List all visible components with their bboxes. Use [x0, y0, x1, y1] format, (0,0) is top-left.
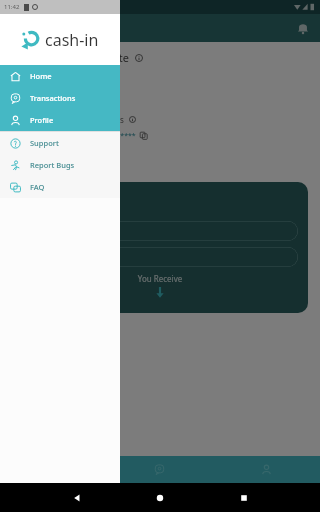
- staticText: You Receive: [22, 273, 298, 284]
- button[interactable]: [22, 247, 298, 267]
- staticText: Support: [30, 138, 59, 148]
- button[interactable]: Support: [0, 132, 120, 154]
- button[interactable]: Back: [70, 491, 84, 505]
- staticText: : Coming soon..: [54, 162, 106, 172]
- staticText: Report Bugs: [30, 160, 75, 170]
- button[interactable]: Transactions: [106, 456, 213, 483]
- staticText: cash-in: [45, 29, 99, 51]
- staticText: bc1qrf5nf857zns2*********: [42, 131, 136, 141]
- button[interactable]: FAQ: [0, 176, 120, 198]
- staticText: ₦0: [22, 300, 298, 305]
- staticText: Rate Calculator: [22, 190, 91, 202]
- staticText: FAQ: [30, 182, 45, 192]
- button[interactable]: Home: [0, 65, 120, 87]
- button[interactable]: Report Bugs: [0, 154, 120, 176]
- staticText: .81/USD: [65, 92, 96, 103]
- staticText: USDC: [35, 162, 54, 172]
- button[interactable]: Transactions: [0, 87, 120, 109]
- staticText: ₦: [12, 88, 20, 106]
- staticText: USDT: [35, 147, 54, 157]
- staticText: Profile: [30, 115, 54, 125]
- staticText: Home: [30, 71, 52, 81]
- button[interactable]: Notifications: [294, 19, 312, 37]
- staticText: Transactions: [30, 93, 76, 103]
- staticText: Today's Exchange Rate: [12, 50, 130, 65]
- staticText: 11:42: [4, 3, 20, 11]
- button[interactable]: Profile: [0, 109, 120, 131]
- button[interactable]: Recents: [237, 491, 251, 505]
- button[interactable]: [22, 221, 298, 241]
- staticText: Bitcoin:: [12, 131, 39, 141]
- staticText: 616: [20, 71, 65, 106]
- button[interactable]: Copy address: [140, 132, 148, 140]
- staticText: You Send: [22, 206, 298, 217]
- staticText: Your Personal Cashin Address: [12, 114, 124, 125]
- button[interactable]: Home: [153, 491, 167, 505]
